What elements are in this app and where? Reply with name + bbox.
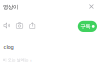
staticText: 영상이 (3, 4, 18, 10)
button[interactable]: Subscribe (78, 21, 97, 32)
staticText: clog (3, 43, 13, 50)
button[interactable]: Share (29, 22, 36, 29)
staticText: 비 오는 날에는 + (3, 57, 32, 62)
staticText: 구독 (80, 23, 90, 30)
button[interactable]: Sound (3, 22, 10, 29)
button[interactable]: Close (89, 4, 94, 9)
button[interactable]: Camera (16, 22, 23, 29)
